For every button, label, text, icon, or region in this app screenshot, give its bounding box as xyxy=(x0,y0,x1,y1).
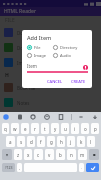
button[interactable]: . xyxy=(79,163,84,172)
staticText: l xyxy=(90,139,92,145)
staticText: ?123 xyxy=(5,165,13,170)
button[interactable]: CANCEL xyxy=(45,78,65,85)
button[interactable]: Documents xyxy=(0,25,101,40)
staticText: p xyxy=(94,126,97,132)
staticText: e xyxy=(24,126,27,132)
staticText: Notes xyxy=(17,100,30,106)
staticText: k xyxy=(80,139,83,145)
staticText: H xyxy=(5,72,9,79)
staticText: o xyxy=(84,126,87,132)
staticText: z xyxy=(17,152,20,158)
staticText: Item xyxy=(27,63,37,69)
button[interactable]: k xyxy=(77,136,85,147)
button[interactable]: h xyxy=(57,136,65,147)
staticText: Book file xyxy=(17,85,36,91)
staticText: u xyxy=(64,126,67,132)
button[interactable]: Audio xyxy=(53,53,88,58)
staticText: v xyxy=(48,152,51,158)
button[interactable]: Directory xyxy=(53,45,88,50)
button[interactable]: Book file xyxy=(0,80,101,95)
staticText: y xyxy=(54,126,57,132)
button[interactable]: Minimize xyxy=(77,113,85,121)
staticText: m xyxy=(80,152,85,158)
button[interactable]: m xyxy=(78,149,87,160)
button[interactable]: p xyxy=(91,123,99,134)
staticText: j xyxy=(70,139,72,145)
staticText: b xyxy=(59,152,62,158)
button[interactable]: y xyxy=(51,123,59,134)
button[interactable]: z xyxy=(14,149,22,160)
button[interactable]: Backspace xyxy=(89,149,99,160)
staticText: Directory xyxy=(60,45,78,50)
button[interactable]: u xyxy=(61,123,69,134)
button[interactable]: Stickers xyxy=(16,113,24,121)
button[interactable]: v xyxy=(45,149,54,160)
button[interactable]: w xyxy=(11,123,19,134)
button[interactable]: r xyxy=(31,123,39,134)
staticText: n xyxy=(70,152,73,158)
button[interactable]: Image xyxy=(27,53,53,58)
staticText: Add Item xyxy=(27,34,52,41)
button[interactable]: c xyxy=(34,149,43,160)
staticText: g xyxy=(50,139,53,145)
button[interactable]: a xyxy=(6,136,15,147)
button[interactable]: t xyxy=(41,123,49,134)
staticText: w xyxy=(13,126,17,132)
staticText: f xyxy=(40,139,42,145)
button[interactable]: d xyxy=(27,136,35,147)
staticText: Audio xyxy=(60,53,71,58)
button[interactable]: Downloads xyxy=(0,40,101,55)
other: Error xyxy=(83,65,88,70)
button[interactable]: s xyxy=(17,136,25,147)
button[interactable]: Shift xyxy=(2,149,12,160)
button[interactable]: i xyxy=(71,123,79,134)
staticText: t xyxy=(44,126,46,132)
staticText: h xyxy=(60,139,63,145)
button[interactable]: Enter xyxy=(86,163,99,172)
staticText: c xyxy=(37,152,40,158)
button[interactable]: , xyxy=(17,163,22,172)
button[interactable]: b xyxy=(56,149,65,160)
button[interactable]: j xyxy=(67,136,75,147)
staticText: d xyxy=(30,139,33,145)
staticText: File xyxy=(34,45,41,50)
button[interactable]: n xyxy=(67,149,76,160)
button[interactable]: Google xyxy=(2,113,10,121)
staticText: x xyxy=(27,152,30,158)
button[interactable]: Images xyxy=(0,55,101,70)
staticText: HTML Reader xyxy=(4,8,37,15)
button[interactable]: x xyxy=(24,149,32,160)
staticText: Images xyxy=(17,60,33,66)
button[interactable]: Clipboard xyxy=(57,113,65,121)
button[interactable]: q xyxy=(2,123,9,134)
staticText: Documents xyxy=(17,30,42,36)
staticText: Image xyxy=(34,53,47,58)
staticText: CREATE xyxy=(71,79,86,84)
button[interactable]: f xyxy=(37,136,45,147)
button[interactable]: Settings xyxy=(29,113,37,121)
button[interactable]: More xyxy=(91,113,99,121)
button[interactable]: ?123 xyxy=(2,163,15,172)
staticText: s xyxy=(20,139,23,145)
button[interactable]: g xyxy=(47,136,55,147)
staticText: i xyxy=(74,126,76,132)
button[interactable]: l xyxy=(87,136,95,147)
button[interactable]: o xyxy=(81,123,89,134)
button[interactable]: File xyxy=(27,45,53,50)
button[interactable]: HTML Reader xyxy=(0,7,101,16)
button[interactable]: Emoji xyxy=(43,113,51,121)
staticText: Downloads xyxy=(17,45,41,51)
button[interactable]: e xyxy=(21,123,29,134)
staticText: r xyxy=(34,126,36,132)
button[interactable]: Notes xyxy=(0,95,101,110)
staticText: a xyxy=(9,139,12,145)
staticText: FILE xyxy=(5,17,15,24)
button[interactable]: Item xyxy=(27,62,88,73)
staticText: . xyxy=(81,165,83,170)
staticText: , xyxy=(19,165,21,170)
button[interactable]: CREATE xyxy=(69,78,88,85)
staticText: q xyxy=(4,126,7,132)
staticText: CANCEL xyxy=(47,79,63,84)
